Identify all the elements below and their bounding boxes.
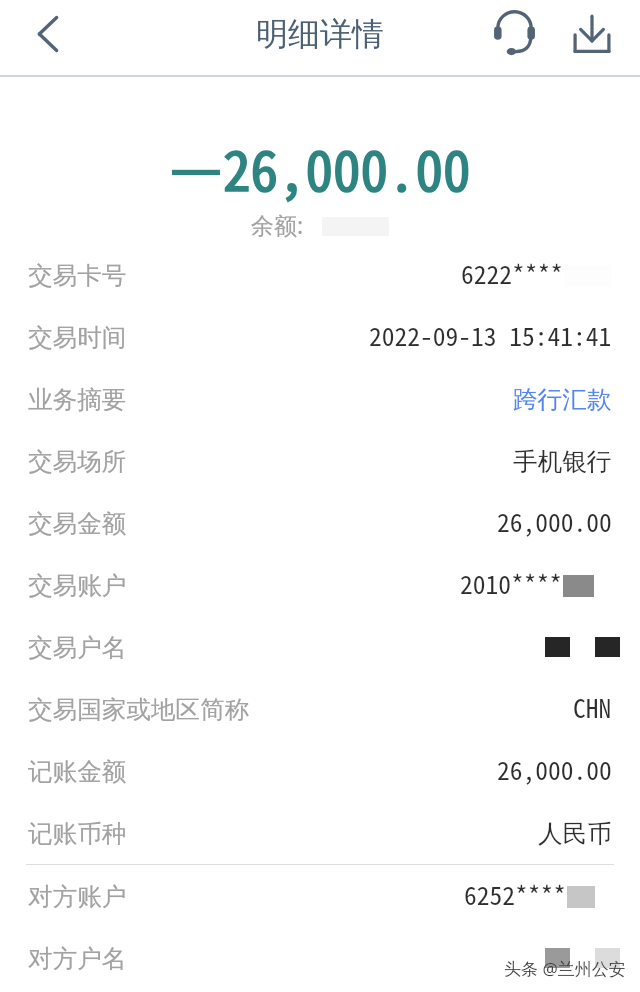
staticText: 6252**** (464, 875, 567, 912)
staticText: 交易金额 (28, 508, 127, 539)
staticText: CHN (573, 688, 612, 725)
staticText: 交易户名 (28, 632, 127, 663)
staticText: 余额: (251, 209, 304, 240)
staticText: 2022-09-13 15:41:41 (369, 316, 612, 353)
button[interactable]: 交易国家或地区简称 (0, 678, 640, 740)
staticText: 交易国家或地区简称 (28, 694, 250, 725)
staticText: 跨行汇款 (513, 384, 612, 415)
staticText: 对方账户 (28, 881, 127, 912)
button[interactable]: 对方账户 (0, 865, 640, 927)
staticText: 记账金额 (28, 756, 127, 787)
button[interactable]: 交易金额 (0, 492, 640, 554)
staticText: 2010**** (460, 564, 563, 601)
staticText: 26,000.00 (223, 127, 471, 207)
button[interactable]: 记账币种 (0, 802, 640, 864)
staticText: 人民币 (538, 818, 612, 849)
staticText: 业务摘要 (28, 384, 127, 415)
button[interactable]: 交易户名 (0, 616, 640, 678)
staticText: 6222**** (461, 254, 564, 291)
button[interactable]: 交易时间 (0, 306, 640, 368)
button[interactable]: 交易账户 (0, 554, 640, 616)
button[interactable]: 交易卡号 (0, 244, 640, 306)
staticText: 交易账户 (28, 570, 127, 601)
button[interactable]: Download (560, 2, 624, 66)
staticText: 头条 @兰州公安 (504, 957, 626, 980)
staticText: 对方户名 (28, 943, 127, 974)
button[interactable]: 对方户名 (0, 927, 640, 989)
button[interactable]: 业务摘要 (0, 368, 640, 430)
staticText: 明细详情 (256, 14, 384, 54)
button[interactable]: 交易场所 (0, 430, 640, 492)
button[interactable]: Back (16, 2, 80, 66)
staticText: 交易时间 (28, 322, 127, 353)
staticText: 26,000.00 (497, 750, 612, 787)
staticText: 交易场所 (28, 446, 127, 477)
staticText: 记账币种 (28, 818, 127, 849)
staticText: 手机银行 (513, 446, 612, 477)
staticText: — (170, 131, 223, 202)
staticText: 26,000.00 (497, 502, 612, 539)
button[interactable]: 记账金额 (0, 740, 640, 802)
staticText: 交易卡号 (28, 260, 127, 291)
button[interactable]: Customer service (482, 2, 546, 66)
